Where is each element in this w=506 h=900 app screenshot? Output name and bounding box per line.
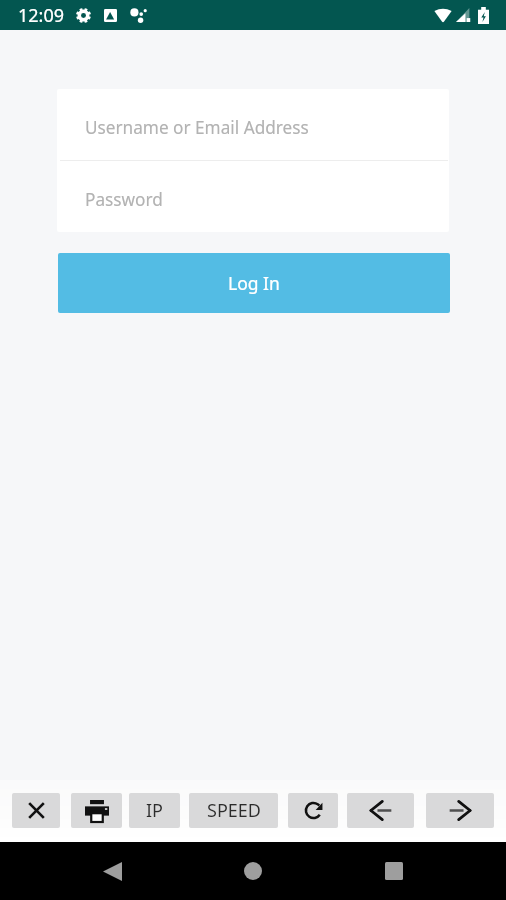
button[interactable]: Back [84, 843, 140, 899]
button[interactable]: Close [12, 793, 60, 828]
button[interactable]: Password [57, 161, 449, 232]
staticText: 12:09 [18, 3, 65, 28]
button[interactable]: Username or Email Address [57, 89, 449, 160]
staticText: Username or Email Address [85, 116, 309, 139]
button[interactable]: Back [347, 793, 414, 828]
button[interactable]: IP [129, 793, 180, 828]
button[interactable]: Log In [58, 253, 450, 313]
button[interactable]: Print [71, 793, 122, 828]
staticText: Password [85, 188, 163, 211]
staticText: Log In [228, 271, 280, 295]
staticText: IP [146, 798, 163, 823]
button[interactable]: Recents [366, 843, 422, 899]
button[interactable]: Home [225, 843, 281, 899]
button[interactable]: Forward [426, 793, 494, 828]
staticText: SPEED [207, 798, 261, 823]
button[interactable]: Reload [288, 793, 338, 828]
button[interactable]: SPEED [189, 793, 278, 828]
